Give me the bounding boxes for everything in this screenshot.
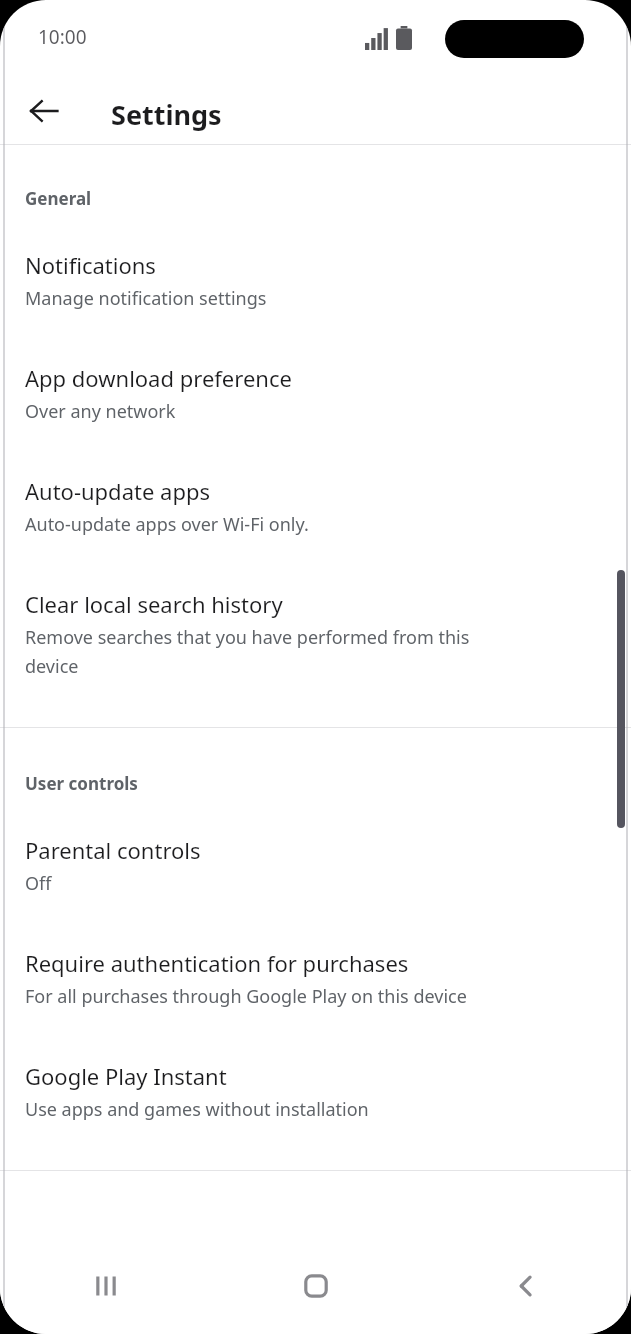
button[interactable]: Parental controls xyxy=(0,835,631,896)
button[interactable]: Notifications xyxy=(0,250,631,311)
staticText: Off xyxy=(25,871,52,896)
staticText: 10:00 xyxy=(38,24,87,50)
staticText: User controls xyxy=(25,772,138,795)
staticText: device xyxy=(25,654,79,679)
staticText: App download preference xyxy=(25,363,292,393)
staticText: Clear local search history xyxy=(25,589,283,619)
staticText: Auto-update apps over Wi-Fi only. xyxy=(25,512,309,537)
staticText: Manage notification settings xyxy=(25,286,267,311)
button[interactable]: Back xyxy=(421,1232,631,1334)
staticText: Notifications xyxy=(25,250,156,280)
staticText: Settings xyxy=(111,96,222,133)
button[interactable]: Require authentication for purchases xyxy=(0,948,631,1009)
button[interactable]: App download preference xyxy=(0,363,631,424)
staticText: For all purchases through Google Play on… xyxy=(25,984,467,1009)
staticText: Remove searches that you have performed … xyxy=(25,625,470,650)
button[interactable]: Google Play Instant xyxy=(0,1061,631,1122)
staticText: Over any network xyxy=(25,399,176,424)
staticText: Require authentication for purchases xyxy=(25,948,409,978)
button[interactable]: Auto-update apps xyxy=(0,476,631,537)
button[interactable]: Home xyxy=(211,1232,421,1334)
button[interactable]: Clear local search history xyxy=(0,589,631,679)
staticText: Google Play Instant xyxy=(25,1061,227,1091)
staticText: General xyxy=(25,187,92,210)
button[interactable]: Recent apps xyxy=(0,1232,211,1334)
staticText: Auto-update apps xyxy=(25,476,210,506)
staticText: Use apps and games without installation xyxy=(25,1097,369,1122)
button[interactable]: Back xyxy=(14,81,74,141)
staticText: Parental controls xyxy=(25,835,201,865)
